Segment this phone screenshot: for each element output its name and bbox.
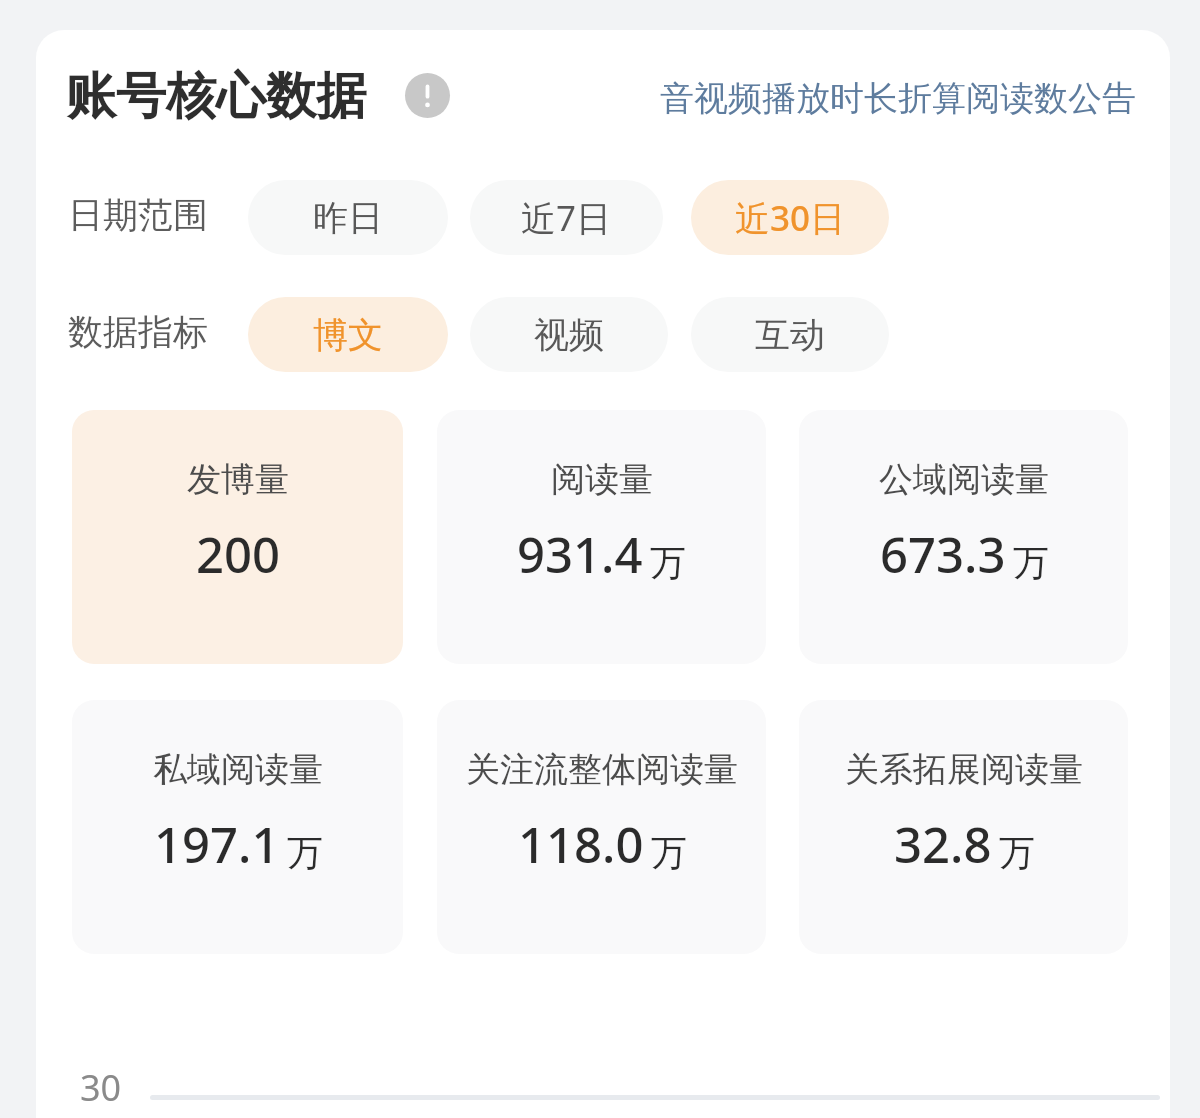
staticText: 万 (999, 830, 1035, 875)
button[interactable]: 近7日 (470, 180, 663, 255)
staticText: 博文 (313, 313, 383, 357)
staticText: 音视频播放时长折算阅读数公告 (660, 77, 1136, 120)
staticText: 197.1 (154, 811, 280, 878)
staticText: 30 (80, 1063, 122, 1112)
button[interactable]: 近30日 (691, 180, 889, 255)
button[interactable]: 关注流整体阅读量 (437, 700, 766, 954)
staticText: 万 (287, 830, 323, 875)
button[interactable]: 昨日 (248, 180, 448, 255)
staticText: 昨日 (313, 196, 383, 240)
button[interactable]: 说明 (405, 73, 450, 118)
staticText: 118.0 (518, 811, 644, 878)
staticText: 931.4 (517, 521, 643, 588)
button[interactable]: 发博量 (72, 410, 403, 664)
staticText: 账号核心数据 (66, 65, 366, 128)
staticText: 互动 (755, 313, 825, 357)
staticText: 万 (651, 830, 687, 875)
staticText: 万 (650, 540, 686, 585)
staticText: 视频 (534, 313, 604, 357)
button[interactable]: 音视频播放时长折算阅读数公告 (580, 70, 1136, 126)
staticText: 数据指标 (68, 310, 208, 354)
staticText: 公域阅读量 (879, 458, 1049, 501)
staticText: 私域阅读量 (153, 748, 323, 791)
staticText: 近30日 (735, 194, 846, 242)
button[interactable]: 私域阅读量 (72, 700, 403, 954)
button[interactable]: 阅读量 (437, 410, 766, 664)
staticText: 近7日 (521, 194, 612, 242)
staticText: 200 (196, 521, 281, 588)
button[interactable]: 关系拓展阅读量 (799, 700, 1128, 954)
staticText: 万 (1013, 540, 1049, 585)
staticText: 阅读量 (551, 458, 653, 501)
staticText: 673.3 (880, 521, 1006, 588)
button[interactable]: 视频 (470, 297, 668, 372)
staticText: 发博量 (187, 458, 289, 501)
staticText: 32.8 (894, 811, 992, 878)
button[interactable]: 公域阅读量 (799, 410, 1128, 664)
staticText: 日期范围 (68, 193, 208, 237)
button[interactable]: 博文 (248, 297, 448, 372)
button[interactable]: 互动 (691, 297, 889, 372)
staticText: 关系拓展阅读量 (845, 748, 1083, 791)
button[interactable]: 账号核心数据 (66, 62, 366, 130)
staticText: 关注流整体阅读量 (466, 748, 738, 791)
